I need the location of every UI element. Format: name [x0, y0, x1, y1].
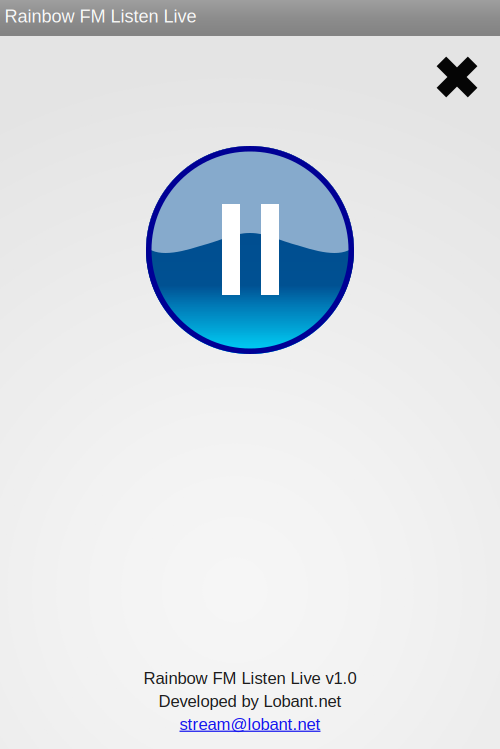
staticText: stream@lobant.net — [179, 715, 320, 734]
staticText: Rainbow FM Listen Live v1.0 — [143, 669, 356, 688]
button[interactable]: stream@lobant.net — [0, 715, 500, 734]
staticText: Rainbow FM Listen Live — [4, 6, 196, 26]
button[interactable]: Close — [433, 53, 481, 101]
button[interactable]: Pause — [146, 146, 354, 354]
staticText: Developed by Lobant.net — [158, 692, 341, 711]
